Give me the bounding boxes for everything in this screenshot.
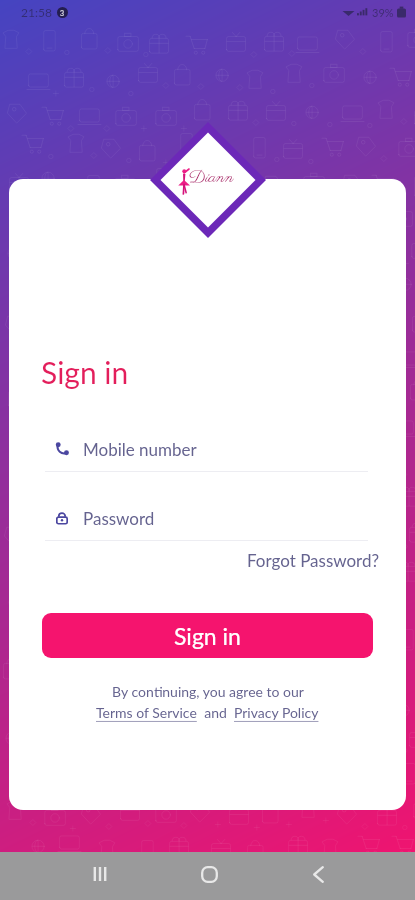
button[interactable]: Privacy Policy — [234, 704, 319, 721]
staticText: 3 — [60, 9, 65, 17]
button[interactable]: Back — [296, 852, 340, 896]
staticText: Password — [83, 508, 155, 528]
button[interactable]: Password — [45, 503, 368, 541]
button[interactable]: Mobile number — [45, 434, 368, 472]
staticText: Sign in — [41, 354, 129, 390]
button[interactable]: Forgot Password? — [243, 547, 384, 573]
button[interactable]: Terms of Service — [96, 704, 197, 721]
staticText: 21:58 — [21, 5, 52, 19]
staticText: 39% — [372, 6, 394, 19]
staticText: By continuing, you agree to our — [112, 683, 304, 700]
staticText: Forgot Password? — [247, 550, 380, 570]
staticText: Diann — [189, 166, 234, 189]
staticText: and — [197, 704, 234, 721]
button[interactable]: Recents — [78, 852, 122, 896]
button[interactable]: Sign in — [42, 613, 373, 658]
staticText: Mobile number — [83, 439, 197, 459]
button[interactable]: Home — [187, 852, 231, 896]
staticText: Sign in — [174, 622, 241, 650]
